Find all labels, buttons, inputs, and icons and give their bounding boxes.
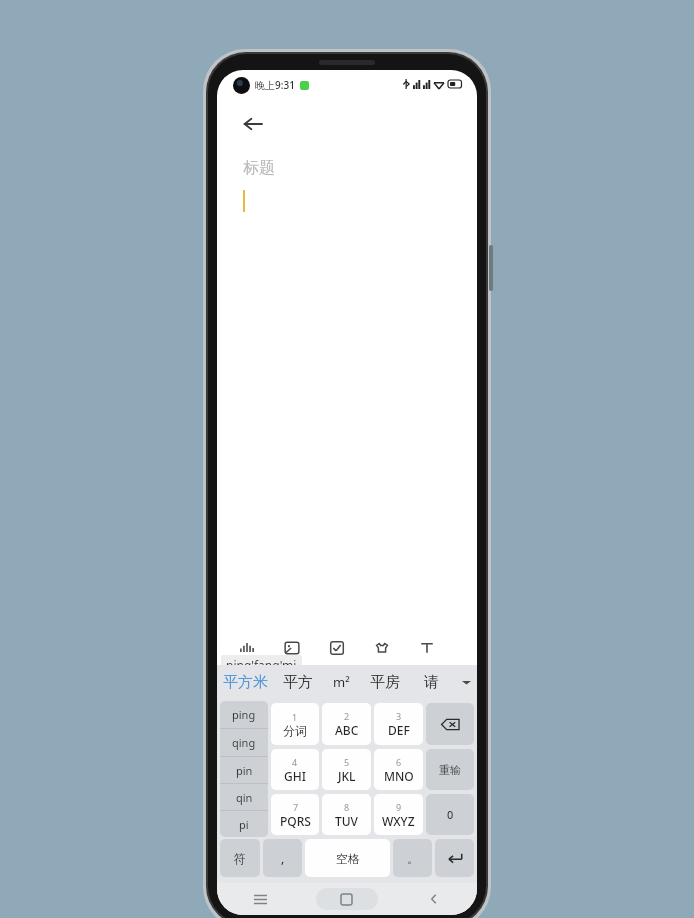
staticText: WXYZ xyxy=(382,813,415,829)
button[interactable]: Checklist xyxy=(312,631,361,665)
staticText: 5 xyxy=(344,756,350,768)
button[interactable]: 7 xyxy=(271,794,319,835)
button[interactable]: 9 xyxy=(374,794,423,835)
button[interactable]: Text style xyxy=(402,631,451,665)
staticText: 9 xyxy=(396,801,402,813)
staticText: qin xyxy=(236,790,253,805)
button[interactable]: 5 xyxy=(322,749,371,790)
button[interactable]: qing xyxy=(220,729,268,756)
button[interactable]: Back xyxy=(231,102,275,146)
staticText: MNO xyxy=(384,768,414,784)
button[interactable]: 平方 xyxy=(274,665,321,699)
button[interactable]: Back xyxy=(390,883,477,915)
button[interactable]: Voice xyxy=(222,631,271,665)
button[interactable]: 符 xyxy=(220,839,260,877)
button[interactable]: Home xyxy=(303,883,390,915)
staticText: pin xyxy=(236,763,253,778)
button[interactable]: , xyxy=(263,839,302,877)
button[interactable]: 8 xyxy=(322,794,371,835)
button[interactable]: 平房 xyxy=(361,665,408,699)
button[interactable]: Recents xyxy=(217,883,303,915)
staticText: 标题 xyxy=(243,158,275,178)
staticText: 符 xyxy=(234,851,246,866)
staticText: 0 xyxy=(447,807,454,822)
button[interactable]: qin xyxy=(220,784,268,810)
staticText: 8 xyxy=(344,801,350,813)
button[interactable]: 空格 xyxy=(305,839,390,877)
button[interactable]: Backspace xyxy=(426,703,474,745)
button[interactable]: pi xyxy=(220,811,268,837)
staticText: 平方 xyxy=(283,673,313,692)
staticText: 请 xyxy=(424,673,439,692)
staticText: 平方米 xyxy=(223,673,268,692)
staticText: 1 xyxy=(292,711,298,723)
staticText: GHI xyxy=(284,768,306,784)
staticText: 7 xyxy=(293,801,299,813)
button[interactable]: More candidates xyxy=(455,665,477,699)
staticText: 6 xyxy=(396,756,402,768)
staticText: m² xyxy=(333,673,350,691)
staticText: 3 xyxy=(396,710,402,722)
button[interactable]: 0 xyxy=(426,794,474,835)
staticText: ABC xyxy=(335,722,359,738)
button[interactable]: 3 xyxy=(374,703,423,745)
staticText: 分词 xyxy=(283,723,307,738)
staticText: 重输 xyxy=(439,763,461,777)
staticText: pi xyxy=(239,817,249,832)
staticText: PQRS xyxy=(280,813,311,829)
staticText: ping'fang'mi xyxy=(226,657,297,673)
button[interactable]: 平方米 xyxy=(217,665,274,699)
staticText: , xyxy=(281,850,285,866)
button[interactable]: 1 xyxy=(271,703,319,745)
staticText: 2 xyxy=(344,710,350,722)
staticText: 。 xyxy=(407,851,419,866)
button[interactable]: 4 xyxy=(271,749,319,790)
staticText: ping xyxy=(232,707,256,722)
staticText: 4 xyxy=(292,756,298,768)
staticText: 平房 xyxy=(370,673,400,692)
button[interactable]: ping xyxy=(220,701,268,728)
button[interactable]: 6 xyxy=(374,749,423,790)
staticText: 空格 xyxy=(336,851,360,866)
button[interactable]: Sticker xyxy=(357,631,406,665)
button[interactable]: Enter xyxy=(435,839,474,877)
staticText: 晚上9:31 xyxy=(255,78,295,92)
button[interactable]: m² xyxy=(321,665,361,699)
button[interactable]: 重输 xyxy=(426,749,474,790)
staticText: JKL xyxy=(338,768,356,784)
staticText: qing xyxy=(232,735,256,750)
button[interactable]: 请 xyxy=(408,665,455,699)
button[interactable]: pin xyxy=(220,757,268,783)
button[interactable]: Image xyxy=(267,631,316,665)
staticText: DEF xyxy=(388,722,410,738)
staticText: TUV xyxy=(335,813,358,829)
button[interactable]: 2 xyxy=(322,703,371,745)
button[interactable]: 。 xyxy=(393,839,432,877)
